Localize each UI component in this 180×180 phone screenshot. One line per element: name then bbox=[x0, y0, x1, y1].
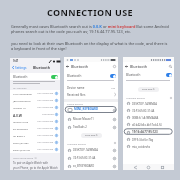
staticText: JBLtuneshop-bl bbox=[13, 99, 31, 102]
staticText: mia_cot:devhs bbox=[132, 145, 150, 149]
staticText: A.E.W bbox=[13, 113, 22, 117]
button[interactable]: mia_cot:devhs bbox=[127, 143, 172, 150]
button[interactable]: Bluetooth bbox=[13, 73, 58, 80]
staticText: Available devices bbox=[126, 96, 145, 99]
button[interactable]: 008B:6:1:A:9BM4A8A bbox=[127, 114, 172, 121]
staticText: Not Connected bbox=[37, 148, 54, 151]
button[interactable]: MINI_KEYBOARD bbox=[68, 105, 116, 115]
staticText: phones search out is the code you such a… bbox=[11, 29, 180, 34]
staticText: Scan now ↻ bbox=[142, 88, 155, 91]
button[interactable]: Device name bbox=[64, 84, 118, 91]
staticText: Bluetooth bbox=[13, 75, 28, 79]
staticText: CAR Multimedia bbox=[13, 92, 32, 95]
button[interactable]: Bluetooth toggle bbox=[110, 74, 116, 78]
other: Back bbox=[134, 166, 137, 169]
staticText: Not Connected bbox=[37, 134, 54, 137]
staticText: Paired devices bbox=[67, 102, 84, 105]
staticText: DESKTOP-1A9BM4A bbox=[73, 148, 98, 152]
other: More info bbox=[55, 148, 58, 151]
button[interactable]: BT-Keyboard bbox=[10, 125, 60, 132]
other: More info bbox=[55, 127, 58, 130]
staticText: a keyboard in front of the sign! bbox=[11, 46, 180, 51]
button[interactable]: Scan now ↻ bbox=[85, 134, 98, 137]
button[interactable]: Bluetooth toggle bbox=[166, 73, 172, 77]
staticText: Bluetooth bbox=[126, 73, 141, 77]
staticText: MINI_KEYBOARD bbox=[74, 107, 99, 111]
other: Back bbox=[66, 65, 69, 68]
button[interactable]: 19:16:44:77:95:123 bbox=[127, 128, 172, 136]
staticText: Connected bbox=[74, 111, 86, 114]
staticText: Bluetooth bbox=[71, 64, 89, 69]
other: More info bbox=[55, 113, 58, 116]
other: More info bbox=[55, 134, 58, 137]
button[interactable]: a0:b42:b6x-kbf:7cd:4-f4 bbox=[127, 121, 172, 128]
staticText: 008B:6:1:A:9BM4A8A bbox=[132, 116, 159, 120]
other: Recents bbox=[161, 166, 164, 169]
button[interactable]: Bose QC35 nfs bbox=[10, 146, 60, 153]
staticText: Not Connected bbox=[37, 120, 54, 123]
staticText: Generally most cases Bluetooth search ou… bbox=[11, 24, 180, 29]
staticText: TwoBuds 2 bbox=[73, 125, 87, 129]
button[interactable]: DESKTOP-1A9BM4A bbox=[127, 100, 172, 107]
other: Help bbox=[113, 65, 116, 68]
staticText: DESKTOP-1A9BM4A bbox=[132, 102, 157, 106]
staticText: Bluetooth bbox=[33, 65, 50, 70]
staticText: Not Connected bbox=[37, 92, 54, 95]
staticText: Settings bbox=[15, 66, 27, 70]
staticText: To pair an Apple Watch with bbox=[13, 161, 49, 165]
button[interactable]: DESKTOP-1A9BM4A bbox=[68, 146, 116, 154]
staticText: your iPhone, go to the Apple Watch app bbox=[13, 166, 60, 170]
staticText: Bluetooth bbox=[67, 74, 82, 78]
staticText: 9:41 bbox=[13, 59, 19, 63]
button[interactable]: Scan now ↻ bbox=[142, 88, 155, 91]
button[interactable]: MI Band 3 bbox=[10, 132, 60, 139]
button[interactable]: Bluetooth bbox=[67, 71, 116, 80]
staticText: Available devices bbox=[67, 142, 86, 145]
staticText: 74:F3:65:8C:31:4A bbox=[132, 109, 155, 113]
other: More info bbox=[55, 106, 58, 109]
button[interactable]: Bluetooth bbox=[126, 71, 172, 79]
button[interactable]: xx_BTKEYBOARD bbox=[68, 162, 116, 170]
staticText: MI Band 3 bbox=[13, 134, 25, 137]
staticText: Not Connected bbox=[37, 106, 54, 109]
button[interactable]: Mouse M185 bbox=[10, 118, 60, 125]
staticText: Received files bbox=[67, 93, 86, 97]
button[interactable]: DFF5:3:bt:5e:7bg bbox=[127, 136, 172, 143]
staticText: 19:16:44:77:95:123 bbox=[132, 130, 158, 134]
other: Device settings bbox=[113, 109, 116, 112]
staticText: Scan now ↻ bbox=[85, 134, 98, 137]
button[interactable]: 74:F3:65:8C:31:4A bbox=[68, 154, 116, 162]
button[interactable]: 74:F3:65:8C:31:4A bbox=[127, 107, 172, 114]
button[interactable]: Airpods 10 bbox=[10, 104, 60, 111]
staticText: a0:b42:b6x-kbf:7cd:4-f4 bbox=[132, 123, 162, 127]
staticText: Not Connected bbox=[37, 127, 54, 130]
staticText: Bluetooth bbox=[130, 64, 148, 69]
staticText: 74:F3:65:8C:31:4A bbox=[73, 156, 96, 160]
staticText: MY DEVICES bbox=[13, 86, 27, 89]
button[interactable]: xiomi_BT-dev bbox=[10, 139, 60, 146]
button[interactable]: JBLtuneshop-bl bbox=[10, 97, 60, 104]
staticText: Not Connected bbox=[37, 141, 54, 144]
staticText: CONNECTION USE bbox=[0, 6, 180, 18]
staticText: Airpods 10 bbox=[13, 106, 26, 109]
staticText: Mouse Mouse11 bbox=[73, 117, 94, 121]
button[interactable]: Mouse Mouse11 bbox=[68, 115, 116, 123]
other: More info bbox=[55, 141, 58, 144]
button[interactable]: CAR Multimedia bbox=[10, 90, 60, 97]
button[interactable]: TwoBuds 2 bbox=[68, 123, 116, 131]
staticText: Not Connected bbox=[37, 99, 54, 102]
other: More info bbox=[55, 120, 58, 123]
other: Back bbox=[125, 65, 128, 68]
button[interactable]: Bluetooth toggle bbox=[51, 75, 58, 79]
staticText: DFF5:3:bt:5e:7bg bbox=[132, 138, 154, 142]
staticText: Device name bbox=[67, 86, 85, 90]
button[interactable]: Received files bbox=[64, 91, 118, 98]
staticText: BT-Keyboard bbox=[13, 127, 28, 130]
other: Back bbox=[12, 66, 14, 69]
other: More info bbox=[55, 99, 58, 102]
staticText: Mouse M185 bbox=[13, 120, 29, 123]
